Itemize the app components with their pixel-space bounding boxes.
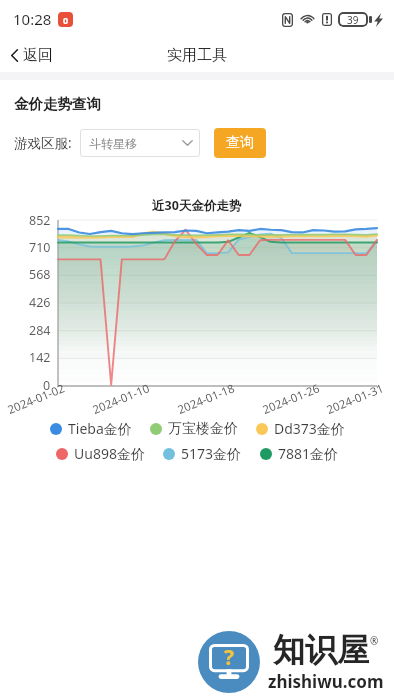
staticText: 2024-01-31 (324, 380, 387, 418)
staticText: Dd373金价 (274, 419, 345, 438)
staticText: 284 (29, 322, 51, 339)
button[interactable]: 5173金价 (163, 444, 242, 463)
staticText: ? (224, 643, 235, 672)
staticText: Uu898金价 (74, 444, 145, 463)
button[interactable]: 返回 (0, 41, 61, 70)
staticText: 142 (29, 349, 51, 366)
staticText: 0 (43, 377, 51, 394)
staticText: 斗转星移 (89, 136, 137, 151)
button[interactable]: 查询 (214, 128, 266, 158)
staticText: 2024-01-18 (175, 380, 238, 418)
staticText: 0 (63, 14, 69, 26)
staticText: 游戏区服: (14, 134, 72, 152)
staticText: Tieba金价 (68, 419, 132, 438)
staticText: 39 (347, 13, 359, 27)
staticText: 2024-01-26 (260, 380, 323, 418)
staticText: ® (370, 634, 379, 648)
button[interactable]: Dd373金价 (256, 419, 345, 438)
staticText: 万宝楼金价 (168, 420, 238, 438)
staticText: zhishiwu.com (268, 670, 384, 693)
staticText: 知识屋 (273, 630, 369, 670)
staticText: 近30天金价走势 (152, 197, 242, 214)
staticText: 金价走势查询 (14, 95, 101, 113)
staticText: 返回 (23, 46, 53, 65)
staticText: 5173金价 (181, 444, 242, 463)
button[interactable]: 万宝楼金价 (150, 420, 238, 438)
other: zhishiwu.com logo (198, 631, 260, 693)
staticText: 查询 (226, 134, 254, 152)
button[interactable]: Uu898金价 (56, 444, 145, 463)
staticText: 2024-01-02 (5, 380, 68, 418)
staticText: 7881金价 (278, 444, 339, 463)
button[interactable]: 7881金价 (260, 444, 339, 463)
staticText: 实用工具 (167, 46, 227, 65)
staticText: 568 (29, 266, 51, 283)
staticText: 2024-01-10 (90, 380, 153, 418)
button[interactable]: 斗转星移 (80, 129, 200, 157)
staticText: 710 (29, 239, 51, 256)
button[interactable]: Tieba金价 (50, 419, 132, 438)
staticText: 426 (29, 294, 51, 311)
staticText: 852 (29, 212, 51, 229)
staticText: 10:28 (13, 9, 52, 29)
